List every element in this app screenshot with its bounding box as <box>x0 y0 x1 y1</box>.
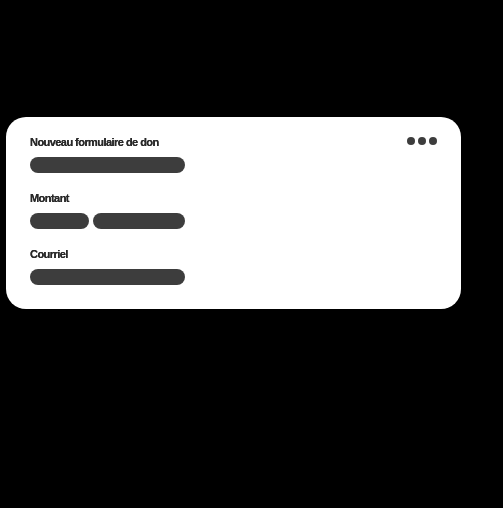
staticText: Montant <box>30 192 69 204</box>
staticText: Courriel <box>30 248 68 260</box>
button[interactable]: Courriel <box>30 269 185 285</box>
staticText: Nouveau formulaire de don <box>30 136 159 148</box>
staticText: Courriel <box>30 248 68 260</box>
button[interactable]: Montant <box>93 213 185 229</box>
staticText: Nouveau formulaire de don <box>30 136 159 148</box>
staticText: Courriel <box>30 248 68 260</box>
staticText: Montant <box>30 192 69 204</box>
staticText: Nouveau formulaire de don <box>30 136 159 148</box>
staticText: Montant <box>30 192 69 204</box>
button[interactable]: More options <box>395 120 449 162</box>
button[interactable]: Nom du formulaire <box>30 157 185 173</box>
button[interactable]: Devise <box>30 213 89 229</box>
